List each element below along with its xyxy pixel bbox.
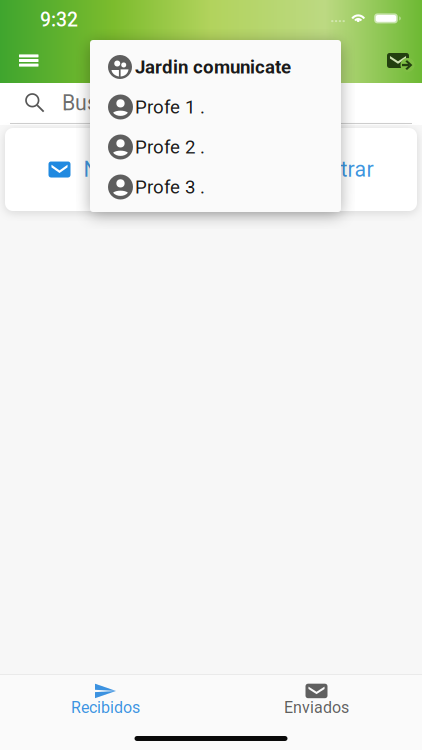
staticText: 9:32 bbox=[40, 8, 78, 31]
button[interactable]: Enviados bbox=[211, 675, 422, 725]
button[interactable]: Compose mail bbox=[360, 37, 422, 83]
staticText: No hay mensajes para mostrar bbox=[83, 157, 373, 182]
staticText: Enviados bbox=[284, 698, 349, 717]
staticText: Profe 1 . bbox=[135, 96, 205, 118]
button[interactable]: Menu bbox=[0, 37, 62, 83]
button[interactable]: Profe 2 . bbox=[90, 127, 341, 167]
staticText: Profe 2 . bbox=[135, 136, 205, 158]
staticText: Jardin comunicate bbox=[135, 56, 291, 78]
button[interactable]: Recibidos bbox=[0, 675, 211, 725]
staticText: Recibidos bbox=[71, 698, 140, 717]
button[interactable]: Jardin comunicate bbox=[90, 47, 341, 87]
staticText: Profe 3 . bbox=[135, 176, 205, 198]
button[interactable]: Profe 1 . bbox=[90, 87, 341, 127]
staticText: Buscar bbox=[62, 90, 128, 115]
button[interactable]: Profe 3 . bbox=[90, 167, 341, 207]
